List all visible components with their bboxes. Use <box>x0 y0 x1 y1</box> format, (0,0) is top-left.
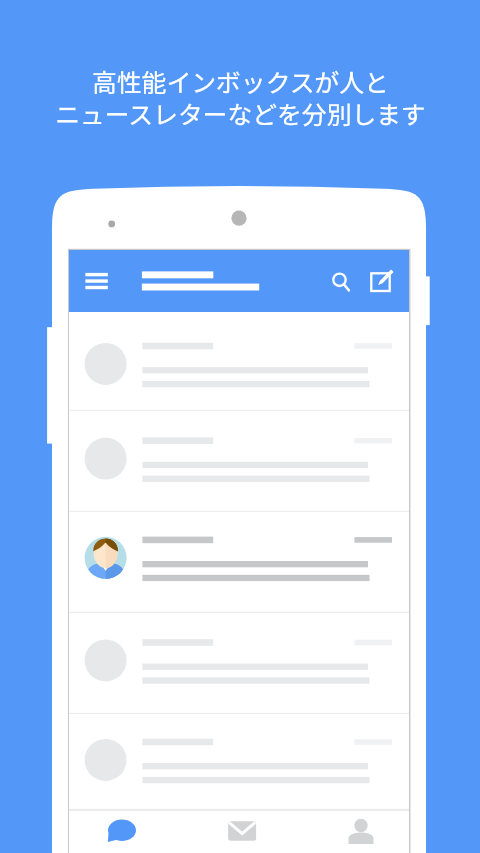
staticText: 高性能インボックスが人と ニュースレターなどを分別します <box>55 63 426 132</box>
button[interactable] <box>69 613 409 714</box>
button[interactable]: Search <box>328 267 356 295</box>
button[interactable] <box>69 312 409 411</box>
button[interactable]: Chats <box>69 810 183 853</box>
button[interactable] <box>69 714 409 810</box>
button[interactable]: Profile <box>296 810 409 853</box>
button[interactable] <box>69 411 409 512</box>
button[interactable] <box>69 512 409 613</box>
button[interactable]: Mail <box>183 810 296 853</box>
button[interactable]: Compose <box>367 267 395 295</box>
button[interactable]: Menu <box>85 269 109 293</box>
